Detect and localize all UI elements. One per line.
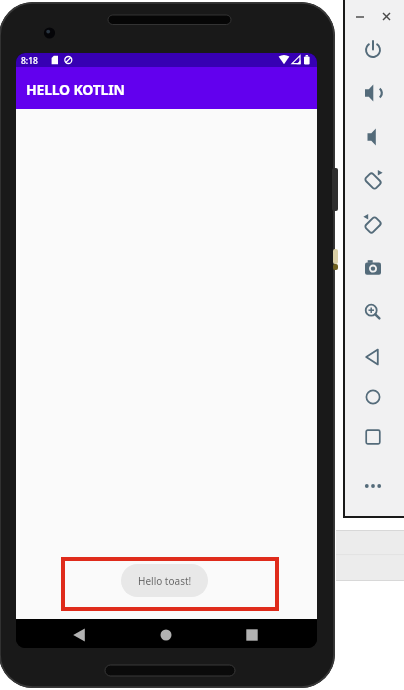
button[interactable] xyxy=(356,208,390,242)
button[interactable] xyxy=(377,7,397,27)
staticText: 8:18 xyxy=(21,55,38,67)
button[interactable] xyxy=(356,380,390,414)
button[interactable] xyxy=(356,251,390,285)
button[interactable] xyxy=(350,7,370,27)
button[interactable]: HELLO KOTLIN xyxy=(16,67,317,109)
button[interactable] xyxy=(356,32,390,66)
button[interactable] xyxy=(68,624,90,646)
button[interactable] xyxy=(356,120,390,154)
button[interactable] xyxy=(356,295,390,329)
button[interactable] xyxy=(155,624,177,646)
staticText: HELLO KOTLIN xyxy=(26,80,125,99)
staticText: Hello toast! xyxy=(138,574,192,588)
button[interactable] xyxy=(356,76,390,110)
button[interactable] xyxy=(356,469,390,503)
button[interactable] xyxy=(241,624,263,646)
button[interactable]: Hello toast! xyxy=(121,564,208,597)
button[interactable] xyxy=(356,164,390,198)
button[interactable] xyxy=(356,340,390,374)
button[interactable] xyxy=(356,420,390,454)
